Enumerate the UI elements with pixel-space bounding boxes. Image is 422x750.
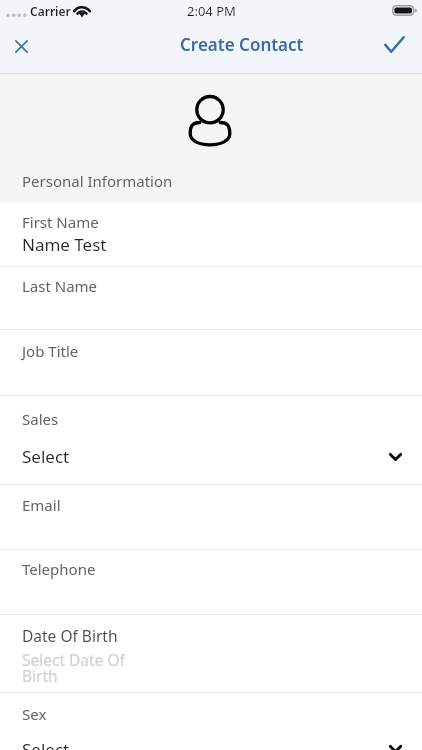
- staticText: Create Contact: [180, 33, 304, 56]
- staticText: Personal Information: [22, 171, 173, 191]
- staticText: Last Name: [22, 276, 98, 296]
- staticText: Select Date Of Birth: [22, 649, 130, 687]
- staticText: First Name: [22, 212, 99, 232]
- staticText: Carrier: [30, 3, 71, 19]
- button[interactable]: Save: [378, 25, 422, 65]
- button[interactable]: Telephone: [0, 550, 422, 614]
- staticText: Job Title: [22, 341, 79, 361]
- button[interactable]: Close: [0, 28, 44, 64]
- staticText: Name Test: [22, 233, 107, 256]
- staticText: Select: [22, 738, 70, 750]
- button[interactable]: Sex: [0, 693, 422, 750]
- button[interactable]: First Name: [0, 203, 422, 266]
- button[interactable]: Sales: [0, 396, 422, 484]
- button[interactable]: Last Name: [0, 267, 422, 329]
- button[interactable]: Email: [0, 485, 422, 549]
- staticText: Sex: [22, 704, 47, 724]
- staticText: Select: [22, 445, 70, 468]
- staticText: Email: [22, 495, 61, 515]
- staticText: Date Of Birth: [22, 625, 118, 646]
- staticText: Sales: [22, 409, 59, 429]
- button[interactable]: Date Of Birth: [0, 615, 422, 692]
- staticText: 2:04 PM: [187, 2, 236, 20]
- button[interactable]: Job Title: [0, 330, 422, 395]
- staticText: Telephone: [22, 559, 96, 579]
